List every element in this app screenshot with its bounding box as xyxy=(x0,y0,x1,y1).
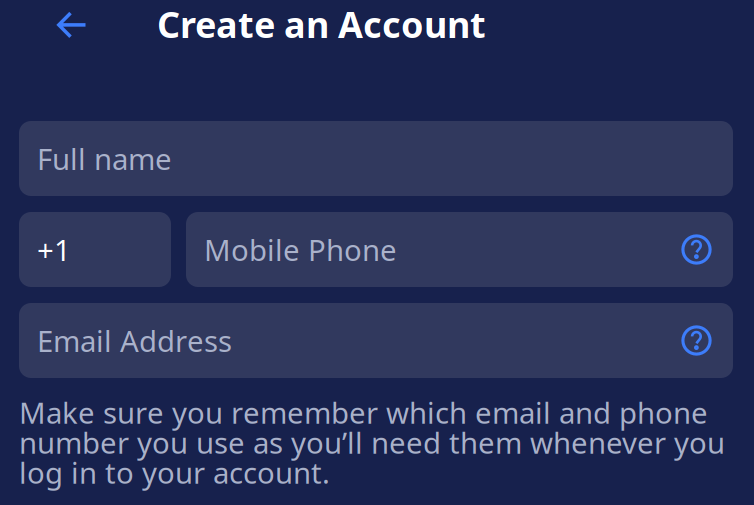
staticText: Create an Account xyxy=(157,0,486,48)
button[interactable]: Back xyxy=(19,0,125,50)
button[interactable]: +1 xyxy=(19,212,171,287)
button[interactable]: Mobile Phone xyxy=(186,212,733,287)
staticText: +1 xyxy=(37,230,71,269)
button[interactable]: Full name xyxy=(19,121,733,196)
staticText: Make sure you remember which email and p… xyxy=(19,393,725,492)
staticText: Email Address xyxy=(37,321,232,360)
staticText: Full name xyxy=(37,139,172,178)
staticText: Mobile Phone xyxy=(204,230,397,269)
button[interactable]: Email Address xyxy=(19,303,733,378)
